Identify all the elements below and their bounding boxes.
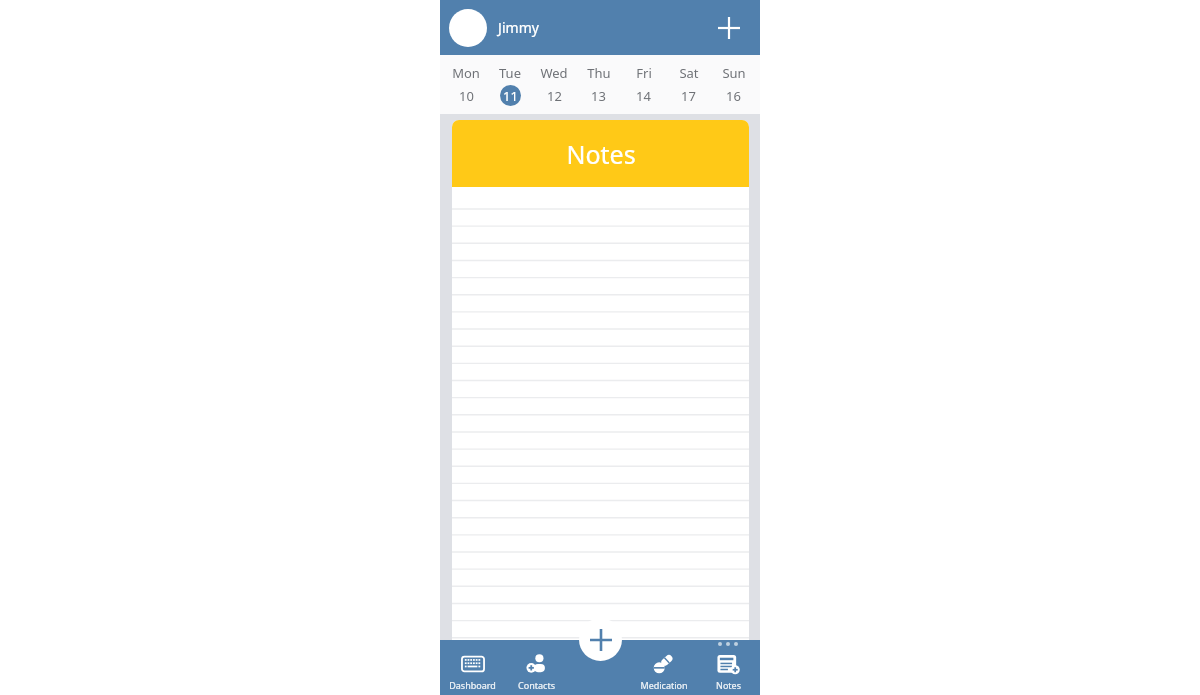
button[interactable]: Add xyxy=(707,6,751,50)
staticText: Tue xyxy=(499,64,521,82)
button[interactable]: Thu xyxy=(576,55,621,114)
staticText: Fri xyxy=(636,64,652,82)
button[interactable]: Dashboard xyxy=(440,640,504,695)
button[interactable]: Wed xyxy=(532,55,576,114)
button[interactable]: Contacts xyxy=(504,640,568,695)
staticText: 10 xyxy=(459,87,474,105)
staticText: Contacts xyxy=(518,679,555,691)
staticText: Dashboard xyxy=(449,679,496,691)
staticText: Medication xyxy=(640,679,688,691)
button[interactable]: Notes xyxy=(452,120,749,640)
button[interactable]: Medication xyxy=(632,640,696,695)
button[interactable]: Fri xyxy=(621,55,666,114)
staticText: Thu xyxy=(587,64,611,82)
staticText: 13 xyxy=(591,87,606,105)
button[interactable]: Sat xyxy=(666,55,711,114)
staticText: 17 xyxy=(681,87,696,105)
staticText: Mon xyxy=(452,64,480,82)
button[interactable]: Add new xyxy=(579,618,622,661)
staticText: Sat xyxy=(679,64,699,82)
button[interactable]: Profile photo xyxy=(449,9,487,47)
staticText: Notes xyxy=(566,137,636,171)
staticText: Sun xyxy=(722,64,746,82)
staticText: 14 xyxy=(636,87,651,105)
button[interactable]: Sun xyxy=(711,55,756,114)
staticText: Notes xyxy=(716,679,741,691)
staticText: Wed xyxy=(540,64,568,82)
staticText: 16 xyxy=(726,87,741,105)
staticText: 12 xyxy=(547,87,562,105)
button[interactable]: Mon xyxy=(444,55,488,114)
staticText: 11 xyxy=(503,87,518,105)
staticText: Jimmy xyxy=(498,18,539,37)
button[interactable]: Notes xyxy=(696,640,760,695)
button[interactable]: Tue xyxy=(488,55,532,114)
